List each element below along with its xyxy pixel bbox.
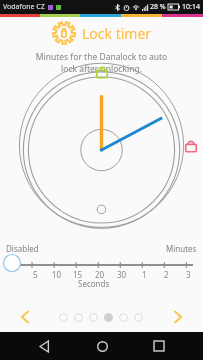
staticText: Lock timer (82, 24, 152, 43)
button[interactable]: Next (167, 306, 189, 328)
staticText: 2 (164, 269, 169, 280)
staticText: 3 (186, 269, 191, 280)
staticText: 10:14 (182, 2, 200, 12)
button[interactable]: Locked (94, 63, 110, 79)
button[interactable]: Unlocked (183, 137, 199, 153)
button[interactable]: Page 3 (89, 313, 98, 322)
button[interactable]: Home (89, 333, 115, 359)
button[interactable]: Previous (14, 306, 36, 328)
staticText: 10 (52, 269, 62, 280)
button[interactable]: Page 6 (134, 313, 143, 322)
staticText: 15 (73, 269, 83, 280)
button[interactable]: Page 5 (119, 313, 128, 322)
button[interactable]: Page 1 (59, 313, 68, 322)
staticText: 20 (95, 269, 105, 280)
button[interactable]: Back (31, 333, 57, 359)
staticText: 5 (33, 269, 38, 280)
staticText: Seconds (78, 278, 110, 289)
staticText: Vodafone CZ (3, 2, 45, 12)
other: Settings (52, 21, 76, 45)
staticText: 28 % (150, 2, 166, 12)
button[interactable]: Page 4 (104, 313, 113, 322)
button[interactable]: Recents (146, 333, 172, 359)
staticText: Minutes (166, 243, 197, 254)
button[interactable]: Page 2 (74, 313, 83, 322)
staticText: Disabled (6, 243, 39, 254)
staticText: 1 (142, 269, 147, 280)
staticText: Minutes for the Danalock to auto lock af… (16, 51, 187, 75)
staticText: 30 (117, 269, 127, 280)
